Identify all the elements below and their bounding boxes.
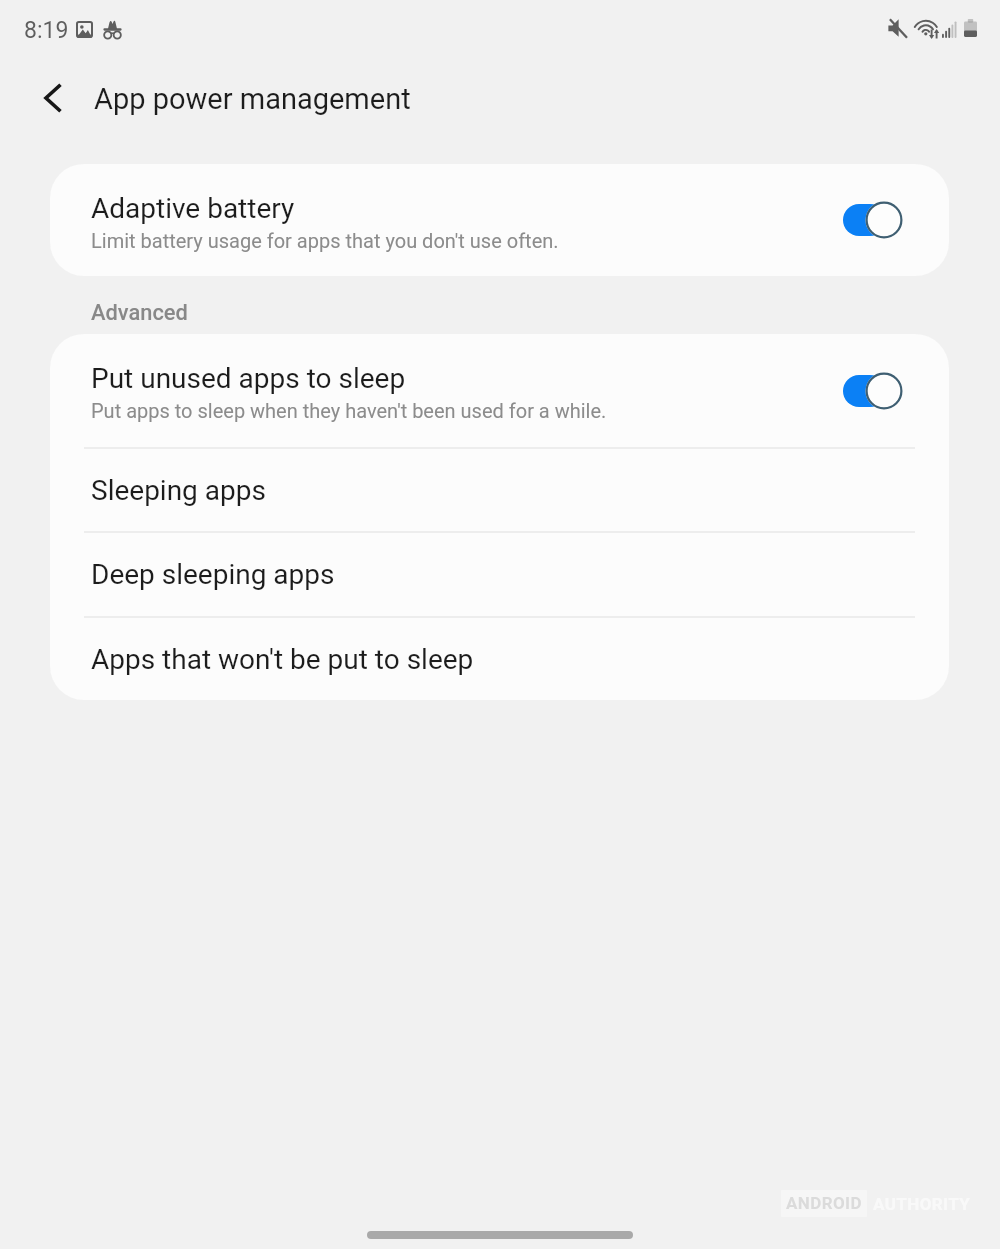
staticText: Adaptive battery	[91, 192, 295, 225]
button[interactable]: Adaptive battery	[50, 164, 949, 276]
staticText: Limit battery usage for apps that you do…	[91, 229, 559, 252]
staticText: Put unused apps to sleep	[91, 362, 406, 395]
staticText: ANDROID	[786, 1193, 862, 1213]
staticText: AUTHORITY	[873, 1194, 971, 1214]
button[interactable]: Put unused apps to sleep	[50, 334, 949, 447]
button[interactable]: Toggle	[843, 200, 904, 240]
staticText: Apps that won't be put to sleep	[91, 643, 474, 676]
button[interactable]: Back	[24, 76, 82, 120]
button[interactable]: Deep sleeping apps	[50, 531, 949, 616]
button[interactable]: Sleeping apps	[50, 447, 949, 531]
staticText: Deep sleeping apps	[91, 558, 335, 591]
staticText: Sleeping apps	[91, 474, 266, 507]
button[interactable]: Apps that won't be put to sleep	[50, 616, 949, 700]
staticText: App power management	[94, 82, 411, 116]
staticText: Put apps to sleep when they haven't been…	[91, 399, 607, 422]
staticText: Advanced	[91, 300, 188, 326]
button[interactable]: Toggle	[843, 371, 904, 411]
staticText: 8:19	[24, 17, 69, 44]
